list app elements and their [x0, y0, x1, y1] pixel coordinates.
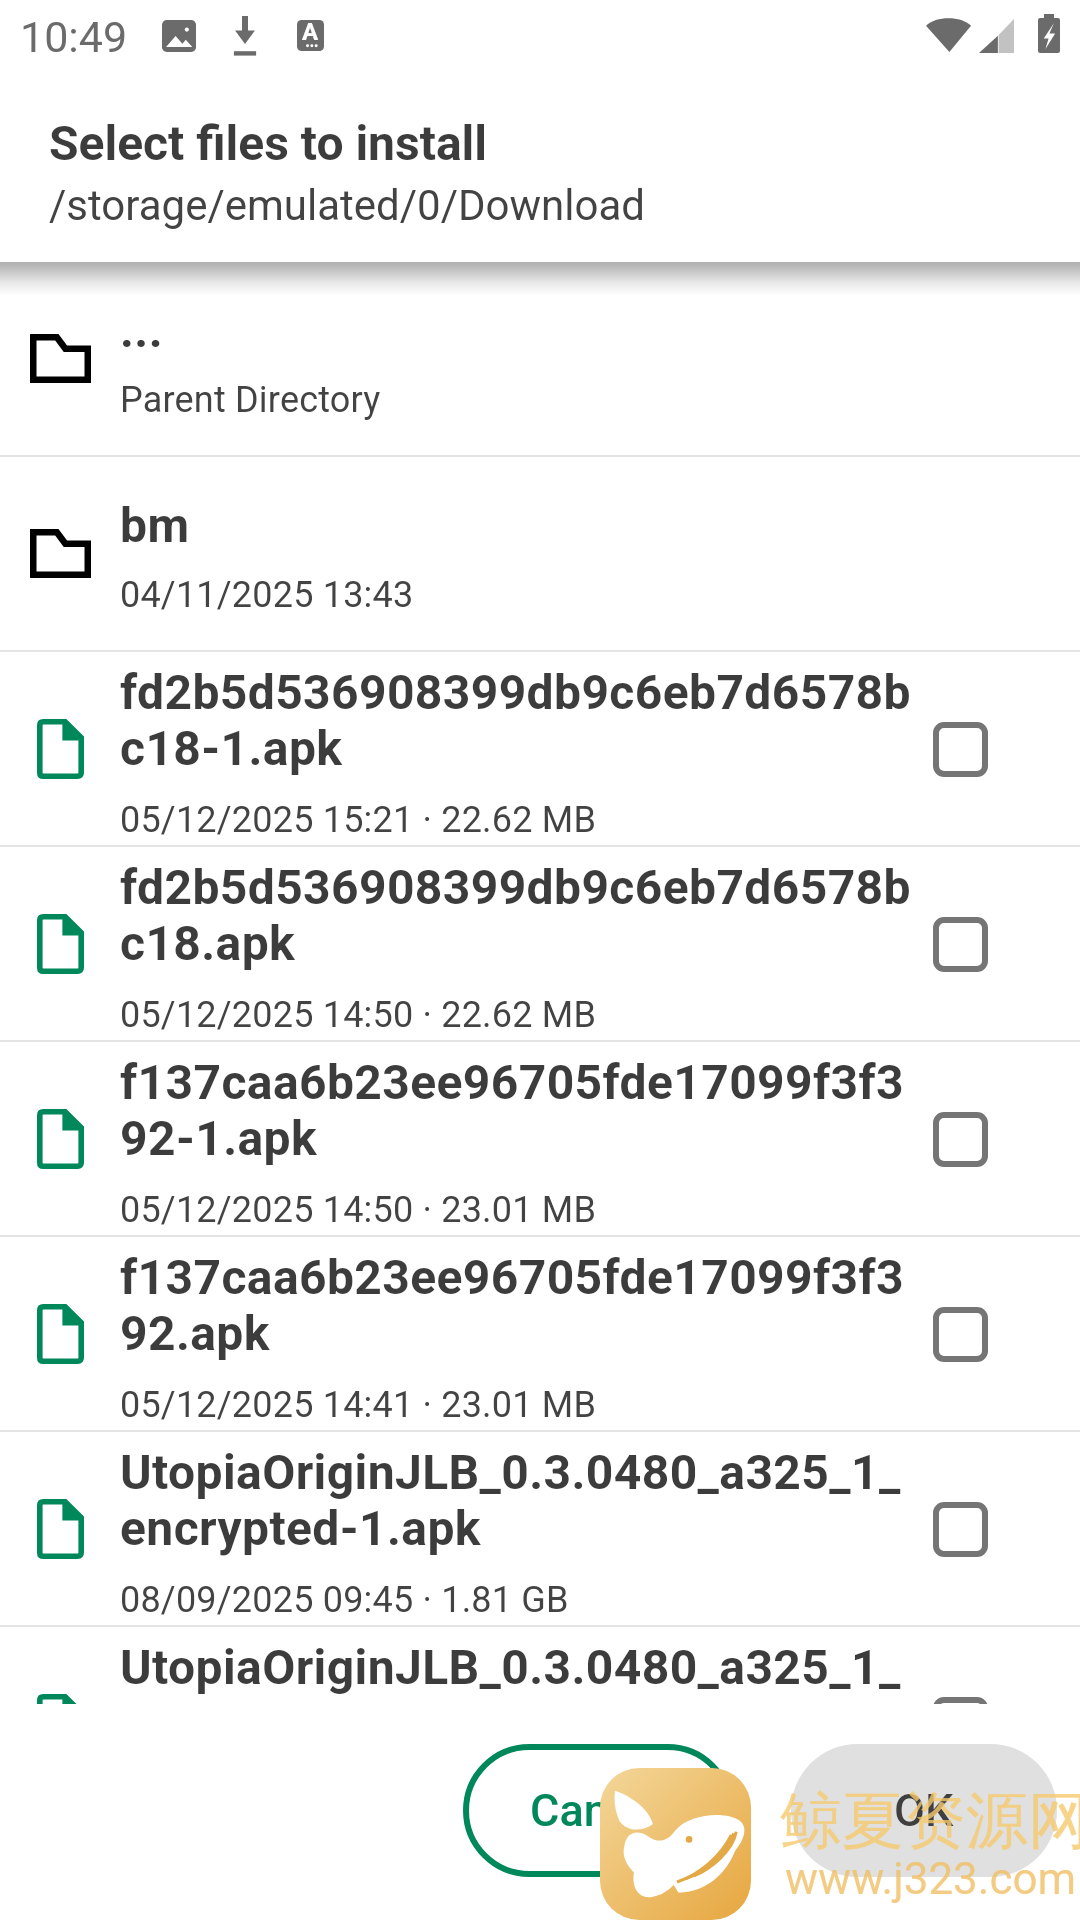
- button[interactable]: UtopiaOriginJLB_0.3.0480_a325_1_encrypte…: [0, 1432, 1080, 1625]
- other: Caption: [297, 20, 324, 51]
- staticText: 04/11/2025 13:43: [120, 574, 414, 616]
- staticText: Cancel: [530, 1784, 668, 1837]
- other: Screenshot: [162, 20, 196, 52]
- staticText: OK: [894, 1784, 954, 1837]
- button[interactable]: Cancel: [463, 1744, 734, 1877]
- staticText: 05/12/2025 15:21 · 22.62 MB: [120, 799, 597, 841]
- staticText: fd2b5d536908399db9c6eb7d6578bc18.apk: [120, 859, 912, 971]
- staticText: 10:49: [20, 12, 128, 62]
- staticText: Select files to install: [49, 115, 488, 171]
- other: Wi-Fi: [926, 15, 971, 52]
- button[interactable]: Select file: [912, 1091, 1008, 1187]
- staticText: fd2b5d536908399db9c6eb7d6578bc18-1.apk: [120, 664, 912, 776]
- button[interactable]: Select file: [912, 896, 1008, 992]
- button[interactable]: Select file: [912, 701, 1008, 797]
- button[interactable]: fd2b5d536908399db9c6eb7d6578bc18.apk: [0, 847, 1080, 1040]
- staticText: /storage/emulated/0/Download: [49, 181, 645, 230]
- staticText: f137caa6b23ee96705fde17099f3f392-1.apk: [120, 1054, 912, 1166]
- staticText: f137caa6b23ee96705fde17099f3f392.apk: [120, 1249, 912, 1361]
- staticText: 08/09/2025 09:45 · 1.81 GB: [120, 1579, 569, 1621]
- other: Download: [230, 16, 260, 56]
- staticText: UtopiaOriginJLB_0.3.0480_a325_1_encrypte…: [120, 1639, 912, 1704]
- staticText: ...: [120, 302, 163, 358]
- button[interactable]: bm: [0, 457, 1080, 650]
- staticText: UtopiaOriginJLB_0.3.0480_a325_1_encrypte…: [120, 1444, 912, 1556]
- staticText: 鲸夏资源网: [780, 1782, 1080, 1860]
- staticText: A: [302, 18, 319, 46]
- button[interactable]: Select file: [912, 1286, 1008, 1382]
- button[interactable]: f137caa6b23ee96705fde17099f3f392-1.apk: [0, 1042, 1080, 1235]
- staticText: www.j323.com: [785, 1853, 1077, 1905]
- staticText: bm: [120, 497, 190, 553]
- button[interactable]: UtopiaOriginJLB_0.3.0480_a325_1_encrypte…: [0, 1627, 1080, 1704]
- staticText: Parent Directory: [120, 379, 381, 421]
- button[interactable]: f137caa6b23ee96705fde17099f3f392.apk: [0, 1237, 1080, 1430]
- staticText: 05/12/2025 14:41 · 23.01 MB: [120, 1384, 597, 1426]
- other: Battery: [1038, 14, 1060, 53]
- staticText: 05/12/2025 14:50 · 23.01 MB: [120, 1189, 597, 1231]
- other: Signal: [979, 19, 1014, 53]
- button[interactable]: Select file: [912, 1481, 1008, 1577]
- button[interactable]: fd2b5d536908399db9c6eb7d6578bc18-1.apk: [0, 652, 1080, 845]
- button[interactable]: ...: [0, 262, 1080, 455]
- staticText: 05/12/2025 14:50 · 22.62 MB: [120, 994, 597, 1036]
- button[interactable]: OK: [791, 1744, 1057, 1877]
- button[interactable]: Select file: [912, 1676, 1008, 1704]
